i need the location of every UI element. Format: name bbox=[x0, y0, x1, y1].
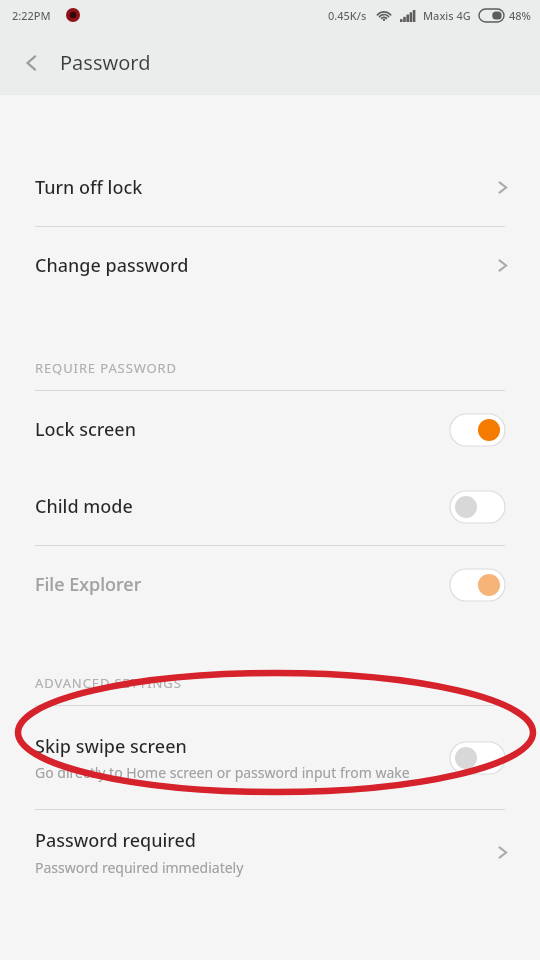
other: Child mode toggle bbox=[450, 491, 505, 523]
button[interactable]: Skip swipe screen bbox=[0, 706, 540, 809]
other: Skip swipe screen toggle bbox=[450, 742, 505, 774]
other: Lock screen toggle bbox=[450, 414, 505, 446]
staticText: Password required bbox=[35, 828, 197, 853]
staticText: 0.45K/s bbox=[328, 8, 367, 23]
other: File Explorer toggle bbox=[450, 569, 505, 601]
staticText: Child mode bbox=[35, 494, 450, 519]
staticText: Skip swipe screen bbox=[35, 734, 187, 759]
staticText: Change password bbox=[35, 253, 189, 278]
staticText: Go directly to Home screen or password i… bbox=[35, 763, 410, 782]
staticText: Maxis 4G bbox=[423, 8, 471, 23]
staticText: Password bbox=[60, 49, 151, 76]
staticText: 48% bbox=[509, 8, 531, 23]
staticText: 2:22PM bbox=[12, 8, 51, 23]
button[interactable]: Turn off lock bbox=[0, 149, 540, 226]
staticText: ADVANCED SETTINGS bbox=[35, 674, 182, 692]
button[interactable]: Child mode bbox=[0, 468, 540, 545]
staticText: File Explorer bbox=[35, 572, 450, 597]
other: Back bbox=[18, 49, 46, 77]
button[interactable]: Change password bbox=[0, 227, 540, 304]
button[interactable]: File Explorer bbox=[0, 546, 540, 623]
staticText: Lock screen bbox=[35, 417, 450, 442]
staticText: Password required immediately bbox=[35, 858, 244, 877]
staticText: REQUIRE PASSWORD bbox=[35, 359, 177, 377]
button[interactable]: Lock screen bbox=[0, 391, 540, 468]
button[interactable]: Back bbox=[0, 30, 171, 95]
button[interactable]: Password required bbox=[0, 810, 540, 894]
staticText: Turn off lock bbox=[35, 175, 143, 200]
